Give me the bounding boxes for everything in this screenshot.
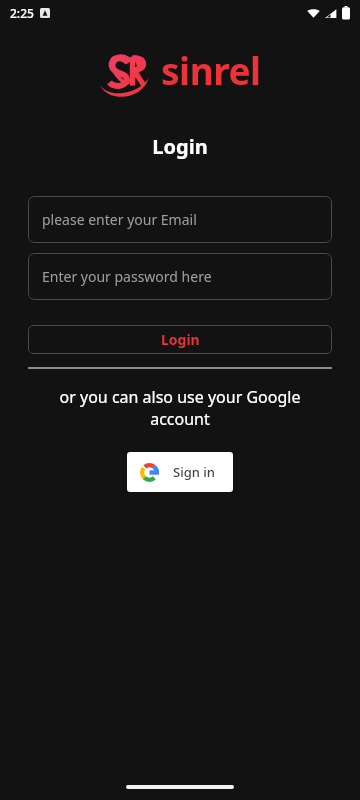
staticText: 2:25 xyxy=(10,5,34,21)
staticText: Login xyxy=(161,330,200,349)
button[interactable]: Google xyxy=(127,452,233,492)
staticText: Sign in xyxy=(173,463,215,481)
button[interactable]: please enter your Email xyxy=(28,196,332,243)
staticText: or you can also use your Google account xyxy=(30,386,330,430)
other: Google xyxy=(140,463,159,482)
button[interactable]: Enter your password here xyxy=(28,253,332,300)
button[interactable]: Login xyxy=(28,325,332,354)
staticText: please enter your Email xyxy=(42,210,197,229)
staticText: Login xyxy=(0,133,360,160)
staticText: sinrel xyxy=(161,45,261,95)
staticText: Enter your password here xyxy=(42,267,212,286)
